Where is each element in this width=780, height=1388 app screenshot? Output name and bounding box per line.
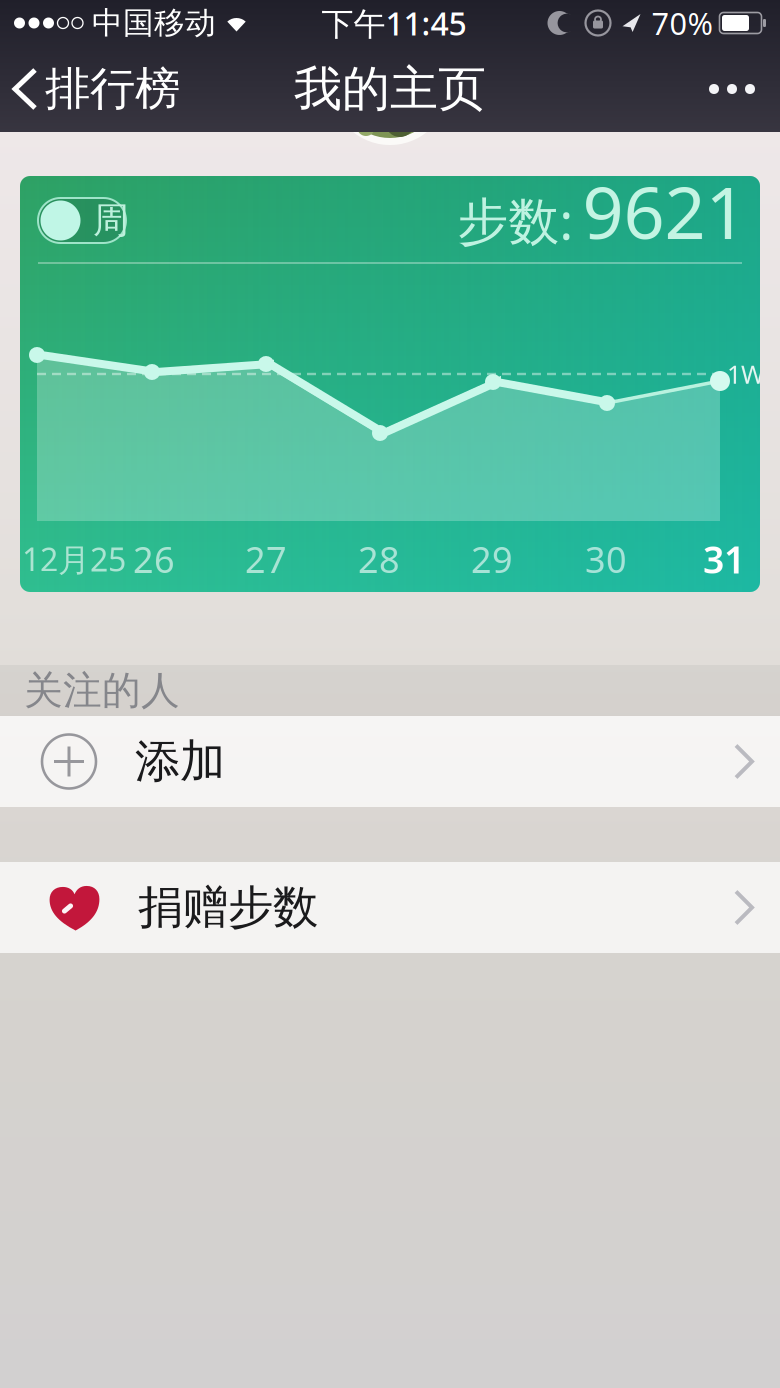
staticText: 29	[471, 535, 513, 583]
button[interactable]: 更多	[709, 60, 780, 118]
staticText: 步数:	[457, 186, 573, 254]
staticText: 1W	[727, 357, 765, 391]
staticText: 排行榜	[45, 61, 180, 117]
staticText: 9621	[582, 163, 746, 259]
staticText: 30	[585, 535, 627, 583]
staticText: 添加	[135, 734, 225, 789]
staticText: 捐赠步数	[138, 880, 318, 935]
staticText: 关注的人	[24, 667, 180, 714]
staticText: 12月25	[22, 538, 126, 580]
staticText: 28	[358, 535, 400, 583]
staticText: 70%	[651, 3, 712, 43]
staticText: 周	[93, 198, 129, 243]
staticText: 下午11:45	[321, 2, 466, 44]
button[interactable]: 周/日切换	[38, 198, 126, 243]
staticText: 中国移动	[92, 4, 216, 42]
button[interactable]: 添加	[0, 716, 780, 807]
staticText: 31	[703, 534, 745, 584]
button[interactable]: 返回排行榜	[0, 45, 180, 133]
button[interactable]: 捐赠步数	[0, 862, 780, 953]
staticText: 我的主页	[294, 59, 486, 118]
staticText: 27	[245, 535, 287, 583]
staticText: 26	[133, 535, 175, 583]
